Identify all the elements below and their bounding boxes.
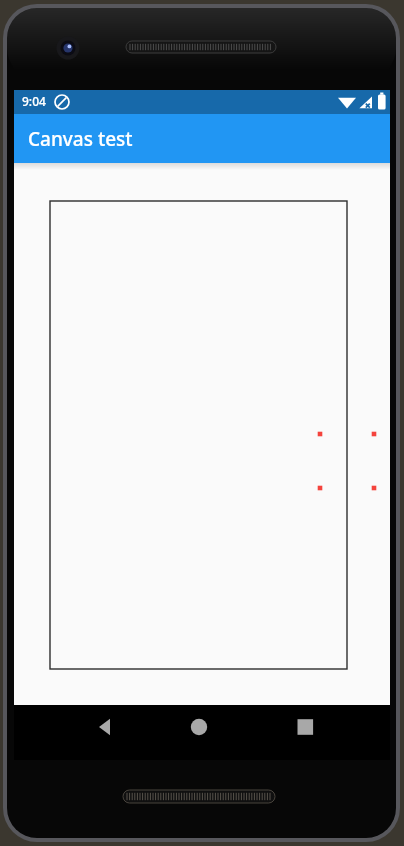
button[interactable]: Recent apps — [279, 702, 331, 752]
staticText: Canvas test — [28, 126, 133, 152]
button[interactable]: Home — [173, 702, 225, 752]
staticText: 9:04 — [22, 93, 46, 109]
button[interactable]: Back — [74, 702, 126, 752]
button[interactable]: Canvas test — [14, 114, 390, 163]
